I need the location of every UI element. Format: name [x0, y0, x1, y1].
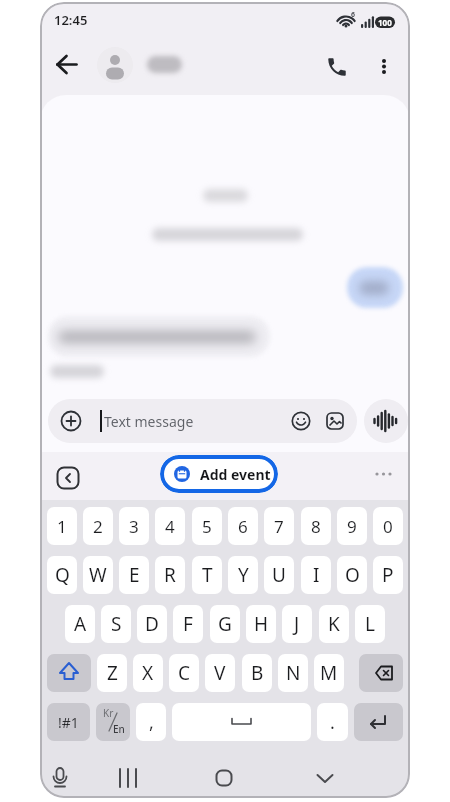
button[interactable]: Q: [47, 556, 77, 594]
button[interactable]: Y: [228, 556, 258, 594]
staticText: O: [345, 562, 360, 588]
button[interactable]: 4: [155, 507, 185, 545]
button[interactable]: 6: [228, 507, 258, 545]
button[interactable]: [172, 703, 311, 741]
button[interactable]: U: [264, 556, 294, 594]
button[interactable]: O: [337, 556, 367, 594]
button[interactable]: X: [133, 654, 163, 692]
button[interactable]: L: [355, 605, 385, 643]
staticText: I: [313, 562, 320, 588]
button[interactable]: R: [155, 556, 185, 594]
button[interactable]: 8: [301, 507, 331, 545]
button[interactable]: D: [137, 605, 167, 643]
button[interactable]: 2: [83, 507, 113, 545]
button[interactable]: G: [210, 605, 240, 643]
staticText: A: [74, 611, 87, 637]
staticText: 8: [311, 515, 321, 538]
button[interactable]: 0: [373, 507, 403, 545]
staticText: F: [183, 611, 193, 637]
button[interactable]: 9: [337, 507, 367, 545]
staticText: M: [320, 660, 338, 686]
staticText: U: [272, 562, 286, 588]
staticText: P: [382, 562, 394, 588]
staticText: 2: [93, 515, 103, 538]
button[interactable]: [366, 47, 402, 87]
staticText: G: [218, 611, 232, 637]
staticText: E: [129, 562, 140, 588]
button[interactable]: [309, 762, 341, 794]
button[interactable]: [112, 762, 144, 794]
button[interactable]: !#1: [47, 703, 90, 741]
staticText: Text message: [104, 412, 194, 431]
button[interactable]: [354, 703, 403, 741]
button[interactable]: [47, 654, 91, 692]
staticText: !#1: [58, 713, 79, 732]
button[interactable]: E: [119, 556, 149, 594]
button[interactable]: N: [278, 654, 308, 692]
staticText: ,: [149, 710, 154, 735]
button[interactable]: T: [192, 556, 222, 594]
staticText: D: [145, 611, 159, 637]
staticText: C: [178, 660, 191, 686]
staticText: 7: [274, 515, 284, 538]
button[interactable]: Add event: [160, 455, 278, 493]
staticText: K: [328, 611, 340, 637]
button[interactable]: 3: [119, 507, 149, 545]
button[interactable]: [359, 654, 403, 692]
button[interactable]: C: [169, 654, 199, 692]
button[interactable]: [47, 44, 87, 84]
staticText: Z: [107, 660, 118, 686]
staticText: R: [164, 562, 176, 588]
staticText: H: [254, 611, 269, 637]
button[interactable]: [44, 762, 76, 794]
staticText: X: [142, 660, 154, 686]
button[interactable]: B: [242, 654, 272, 692]
button[interactable]: M: [314, 654, 344, 692]
staticText: 9: [347, 515, 357, 538]
staticText: V: [214, 660, 226, 686]
staticText: W: [89, 562, 107, 588]
button[interactable]: P: [373, 556, 403, 594]
button[interactable]: 7: [264, 507, 294, 545]
button[interactable]: W: [83, 556, 113, 594]
staticText: 1: [57, 515, 67, 538]
staticText: 5: [202, 515, 212, 538]
staticText: Q: [55, 562, 70, 588]
button[interactable]: K: [319, 605, 349, 643]
staticText: Kr: [103, 706, 114, 720]
staticText: B: [251, 660, 264, 686]
staticText: 100: [378, 17, 392, 28]
button[interactable]: 1: [47, 507, 77, 545]
staticText: L: [365, 611, 375, 637]
staticText: 3: [129, 515, 139, 538]
staticText: 0: [383, 515, 393, 538]
button[interactable]: [317, 47, 357, 87]
button[interactable]: .: [317, 703, 348, 741]
button[interactable]: A: [65, 605, 95, 643]
staticText: N: [286, 660, 301, 686]
button[interactable]: F: [173, 605, 203, 643]
button[interactable]: [97, 47, 133, 83]
staticText: En: [113, 722, 125, 736]
staticText: 4: [165, 515, 175, 538]
button[interactable]: Z: [97, 654, 127, 692]
button[interactable]: I: [301, 556, 331, 594]
staticText: .: [330, 710, 335, 735]
staticText: T: [202, 562, 213, 588]
button[interactable]: V: [205, 654, 235, 692]
button[interactable]: [208, 762, 240, 794]
staticText: 6: [351, 10, 356, 20]
staticText: Y: [238, 562, 249, 588]
button[interactable]: ,: [136, 703, 166, 741]
button[interactable]: [48, 399, 357, 443]
button[interactable]: J: [282, 605, 312, 643]
staticText: S: [111, 611, 122, 637]
button[interactable]: [364, 399, 408, 443]
staticText: Add event: [200, 465, 271, 484]
button[interactable]: Kr: [96, 703, 130, 741]
button[interactable]: [54, 466, 82, 490]
button[interactable]: S: [101, 605, 131, 643]
button[interactable]: H: [246, 605, 276, 643]
button[interactable]: 5: [192, 507, 222, 545]
staticText: 12:45: [54, 11, 88, 29]
